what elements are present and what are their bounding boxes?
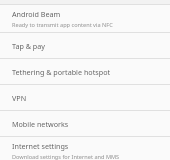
button[interactable]: Android Beam	[0, 5, 170, 32]
button[interactable]: VPN	[0, 85, 170, 110]
staticText: Ready to transmit app content via NFC	[12, 21, 113, 29]
button[interactable]: Tap & pay	[0, 33, 170, 58]
button[interactable]: Tethering & portable hotspot	[0, 59, 170, 84]
staticText: Android Beam	[12, 9, 61, 19]
staticText: VPN	[12, 93, 27, 103]
staticText: Tethering & portable hotspot	[12, 67, 111, 77]
staticText: Tap & pay	[12, 41, 45, 51]
button[interactable]: Mobile networks	[0, 111, 170, 136]
button[interactable]: Internet settings	[0, 137, 170, 160]
staticText: Mobile networks	[12, 119, 69, 129]
staticText: Download settings for Internet and MMS	[12, 153, 120, 160]
staticText: Internet settings	[12, 141, 69, 151]
